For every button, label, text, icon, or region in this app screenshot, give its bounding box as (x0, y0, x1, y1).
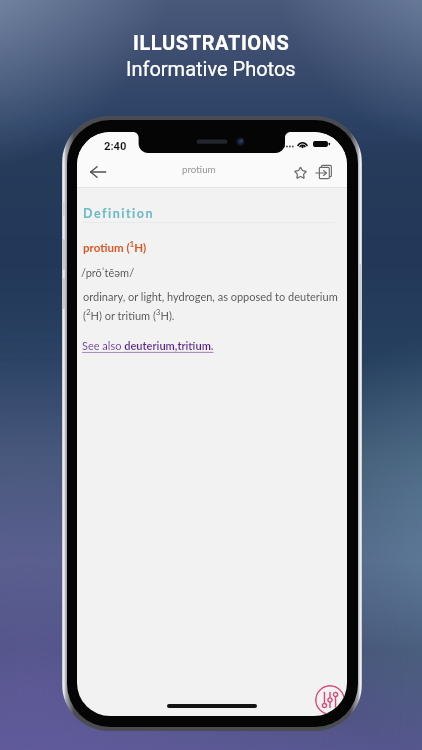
staticText: ordinary, or light, hydrogen, as opposed… (83, 290, 338, 303)
button[interactable]: Add to favourites (286, 158, 314, 186)
staticText: See also deuterium,tritium. (82, 339, 214, 352)
button[interactable]: Display settings (315, 685, 345, 715)
button[interactable]: Back (84, 158, 112, 186)
staticText: /prōˈtēəm/ (81, 266, 135, 279)
staticText: protium (1H) (83, 239, 147, 254)
staticText: 2:40 (104, 140, 127, 153)
staticText: protium (182, 163, 216, 175)
staticText: Definition (83, 206, 154, 221)
staticText: (2H) or tritium (3H). (83, 307, 175, 322)
button[interactable]: Open in another app (310, 158, 338, 186)
staticText: Informative Photos (126, 57, 296, 80)
staticText: ILLUSTRATIONS (133, 31, 290, 54)
